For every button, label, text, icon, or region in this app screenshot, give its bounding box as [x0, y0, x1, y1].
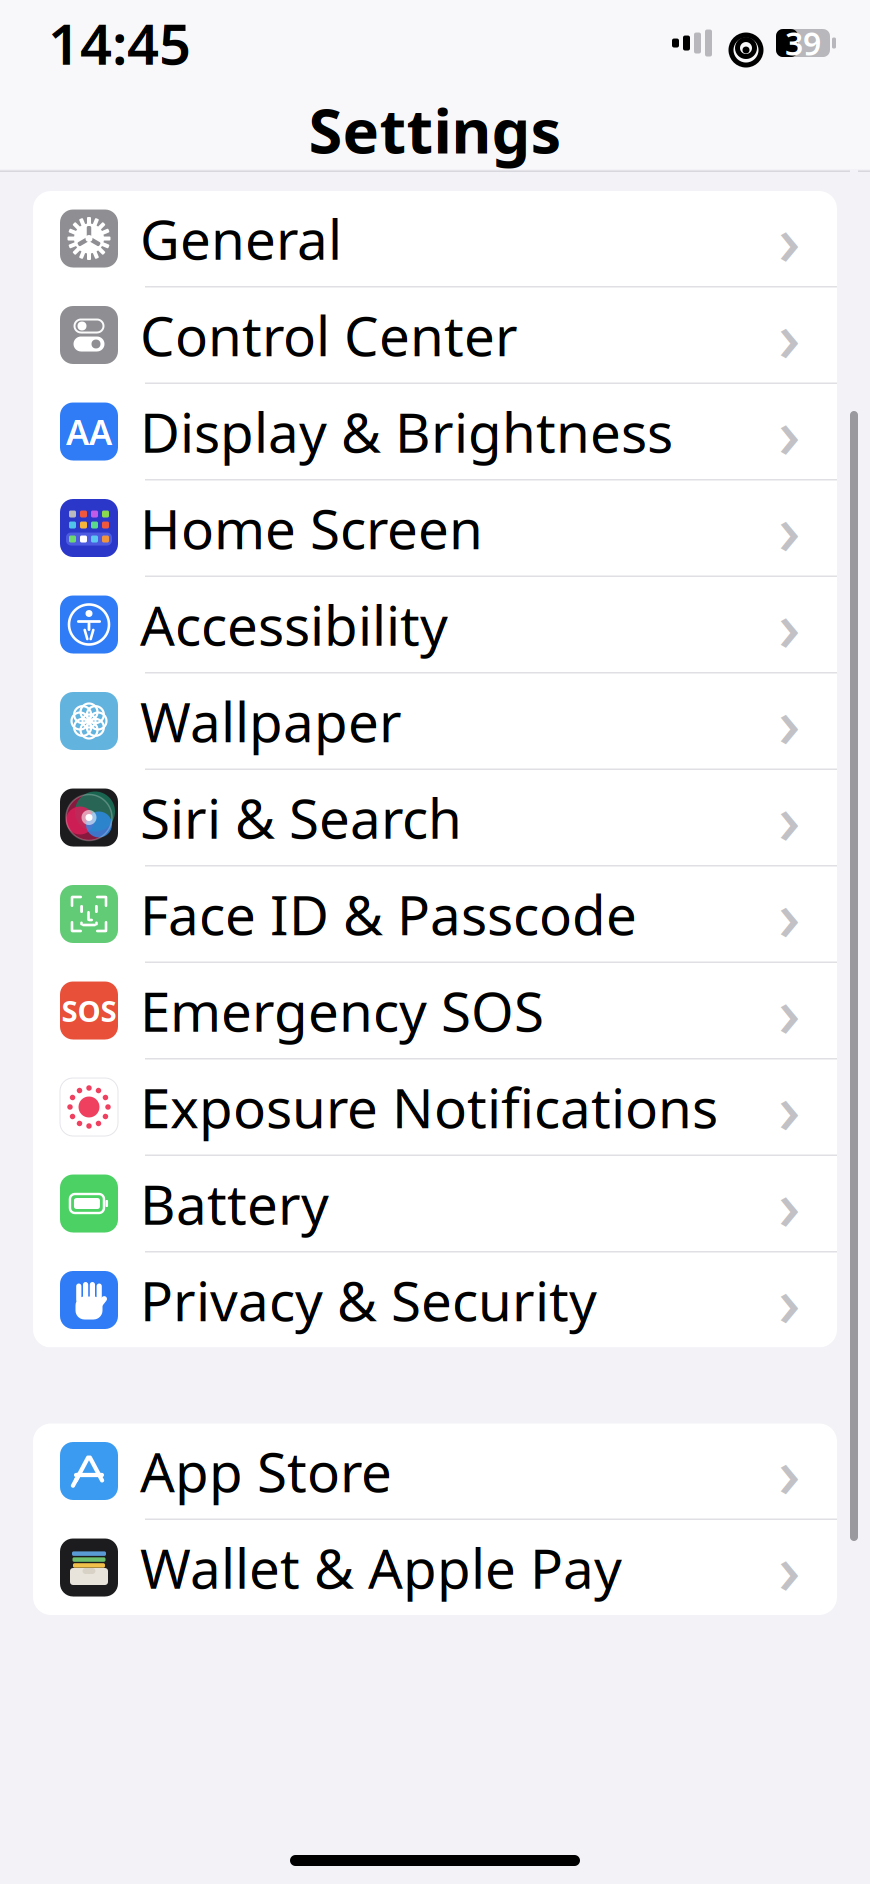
staticText: 39: [785, 22, 821, 64]
staticText: ›: [778, 1254, 801, 1346]
staticText: ›: [778, 964, 801, 1057]
staticText: Emergency SOS: [140, 974, 544, 1047]
staticText: Wallpaper: [140, 685, 402, 757]
staticText: ›: [778, 675, 801, 767]
staticText: ›: [778, 1157, 801, 1250]
staticText: ›: [778, 771, 801, 864]
staticText: ›: [778, 578, 801, 671]
button[interactable]: Siri & Search: [33, 770, 837, 866]
staticText: ›: [778, 482, 801, 574]
staticText: Privacy & Security: [140, 1264, 597, 1336]
staticText: Battery: [140, 1167, 329, 1240]
staticText: Control Center: [140, 299, 518, 371]
button[interactable]: Control Center: [33, 287, 837, 384]
staticText: Display & Brightness: [140, 395, 673, 468]
button[interactable]: Wallet & Apple Pay: [33, 1520, 837, 1615]
staticText: 14:45: [48, 6, 191, 80]
staticText: AA: [66, 408, 112, 454]
staticText: ›: [778, 1425, 801, 1517]
staticText: ›: [778, 1521, 801, 1614]
button[interactable]: Accessibility: [33, 577, 837, 673]
staticText: Settings: [308, 89, 561, 170]
staticText: Wallet & Apple Pay: [140, 1531, 622, 1604]
button[interactable]: Battery: [33, 1156, 837, 1252]
staticText: App Store: [140, 1435, 392, 1507]
button[interactable]: General: [33, 191, 837, 287]
button[interactable]: Wallpaper: [33, 673, 837, 770]
staticText: ›: [778, 868, 801, 960]
button[interactable]: Privacy & Security: [33, 1252, 837, 1347]
staticText: ›: [778, 289, 801, 381]
button[interactable]: AA: [33, 384, 837, 480]
staticText: ›: [778, 192, 801, 285]
staticText: General: [140, 202, 342, 275]
button[interactable]: Face ID & Passcode: [33, 866, 837, 963]
staticText: Accessibility: [140, 588, 448, 661]
staticText: SOS: [61, 991, 116, 1030]
staticText: ›: [778, 385, 801, 478]
button[interactable]: App Store: [33, 1423, 837, 1520]
staticText: Siri & Search: [140, 781, 462, 854]
button[interactable]: Home Screen: [33, 480, 837, 577]
button[interactable]: SOS: [33, 963, 837, 1059]
button[interactable]: Exposure Notifications: [33, 1059, 837, 1156]
staticText: Exposure Notifications: [140, 1071, 718, 1143]
staticText: ›: [778, 1061, 801, 1153]
staticText: Face ID & Passcode: [140, 878, 637, 950]
staticText: Home Screen: [140, 492, 483, 564]
